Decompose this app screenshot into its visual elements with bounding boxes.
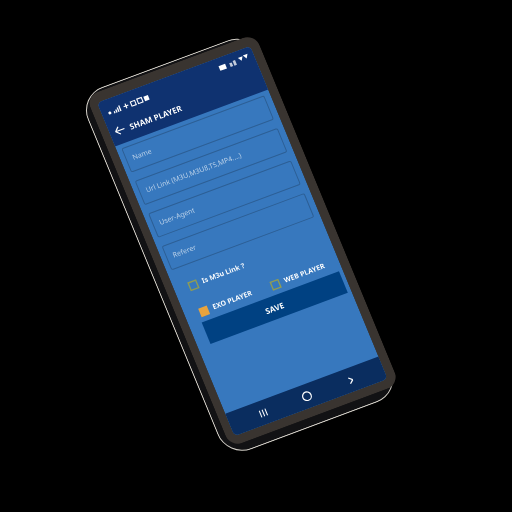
staticText: SHAM PLAYER bbox=[127, 102, 183, 132]
button[interactable]: Name bbox=[121, 95, 274, 173]
staticText: Referer bbox=[171, 242, 199, 260]
staticText: WEB PLAYER bbox=[282, 261, 327, 286]
button[interactable]: EXO PLAYER bbox=[196, 285, 255, 320]
staticText: Url Link (M3U,M3U8,TS,MP4....) bbox=[144, 151, 243, 195]
button[interactable]: Back bbox=[106, 97, 185, 143]
button[interactable]: Referer bbox=[161, 193, 314, 270]
button[interactable]: User-Agent bbox=[148, 160, 301, 238]
staticText: Is M3u Link ? bbox=[200, 261, 247, 286]
button[interactable]: Home bbox=[291, 381, 323, 412]
staticText: User-Agent bbox=[158, 205, 197, 228]
button[interactable]: Is M3u Link ? bbox=[185, 258, 248, 294]
button[interactable]: SAVE bbox=[202, 271, 348, 344]
button[interactable]: Url Link (M3U,M3U8,TS,MP4....) bbox=[135, 128, 287, 205]
staticText: Name bbox=[131, 146, 153, 163]
staticText: SAVE bbox=[263, 299, 286, 316]
staticText: EXO PLAYER bbox=[211, 288, 254, 312]
button[interactable]: Recent apps bbox=[247, 397, 279, 428]
button[interactable]: WEB PLAYER bbox=[267, 258, 328, 294]
button[interactable]: Back bbox=[334, 365, 366, 395]
